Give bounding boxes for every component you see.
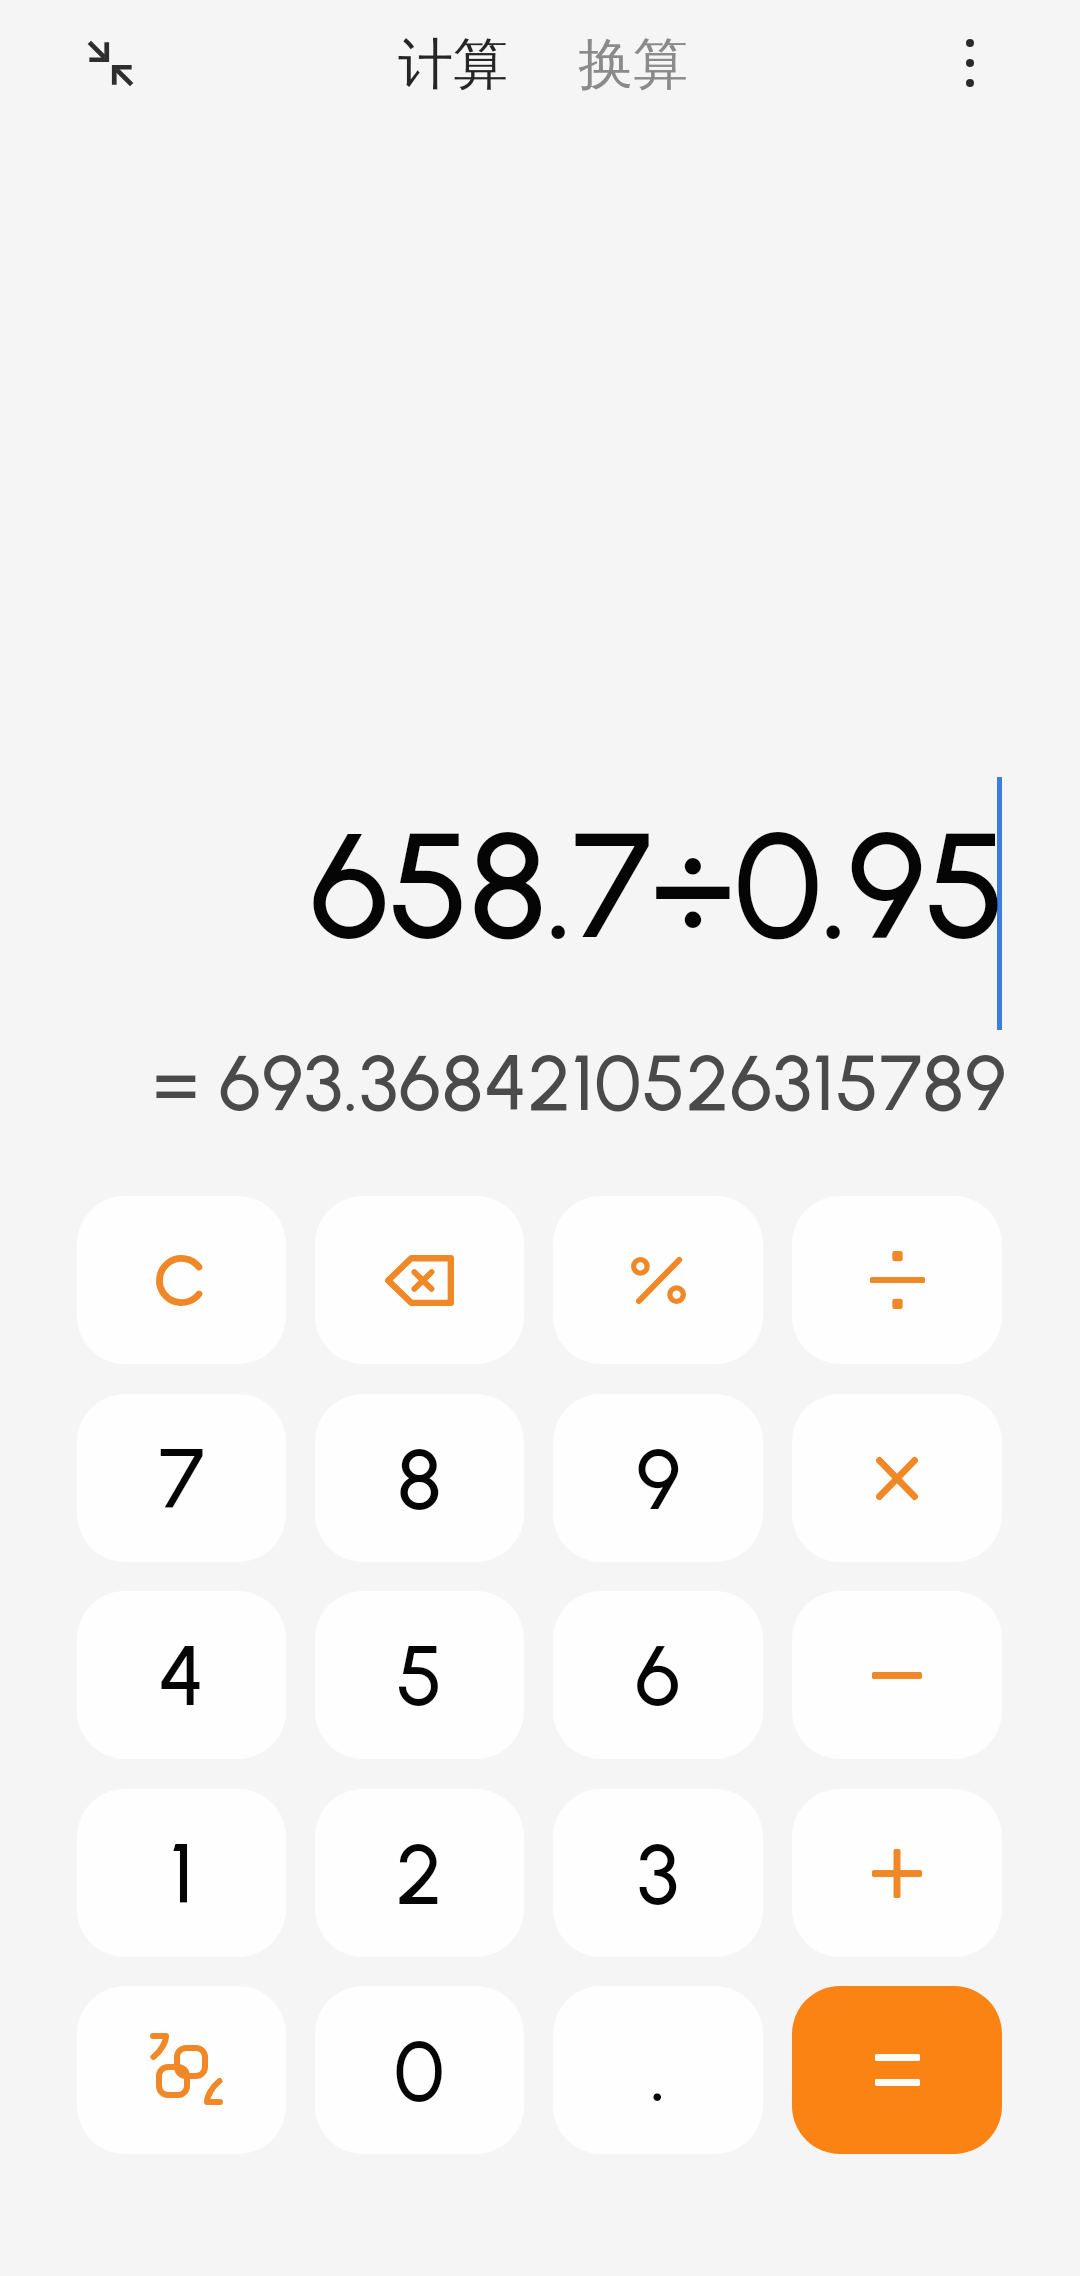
staticText: . — [650, 2020, 667, 2121]
button[interactable]: Divide — [792, 1196, 1002, 1364]
staticText: = 693.3684210526315789 — [0, 1036, 1007, 1130]
button[interactable]: 7 — [77, 1394, 286, 1562]
button[interactable]: Add — [792, 1789, 1002, 1957]
staticText: 1 — [170, 1823, 194, 1924]
button[interactable]: Collapse — [60, 13, 160, 113]
button[interactable]: 5 — [315, 1591, 524, 1759]
staticText: 8 — [397, 1428, 442, 1529]
button[interactable]: More options — [920, 13, 1020, 113]
staticText: 5 — [396, 1625, 443, 1726]
button[interactable]: Percent — [553, 1196, 763, 1364]
button[interactable]: Subtract — [792, 1591, 1002, 1759]
button[interactable]: 0 — [315, 1986, 524, 2154]
button[interactable]: 计算 — [390, 20, 516, 109]
button[interactable]: . — [553, 1986, 763, 2154]
staticText: 6 — [635, 1625, 681, 1726]
staticText: 7 — [159, 1428, 205, 1529]
button[interactable]: 3 — [553, 1789, 763, 1957]
button[interactable]: 6 — [553, 1591, 763, 1759]
button[interactable]: 2 — [315, 1789, 524, 1957]
staticText: 2 — [396, 1823, 443, 1924]
staticText: 3 — [637, 1823, 679, 1924]
button[interactable]: 9 — [553, 1394, 763, 1562]
staticText: 换算 — [578, 30, 688, 99]
button[interactable]: 4 — [77, 1591, 286, 1759]
staticText: 0 — [394, 2020, 445, 2121]
button[interactable]: Clear — [77, 1196, 286, 1364]
button[interactable]: Equals — [792, 1986, 1002, 2154]
staticText: 4 — [158, 1625, 205, 1726]
staticText: 计算 — [398, 30, 508, 99]
button[interactable]: 换算 — [570, 20, 696, 109]
button[interactable]: Unit converter — [77, 1986, 286, 2154]
button[interactable]: 8 — [315, 1394, 524, 1562]
button[interactable]: Multiply — [792, 1394, 1002, 1562]
button[interactable]: 1 — [77, 1789, 286, 1957]
staticText: 658.7÷0.95 — [0, 797, 1005, 973]
staticText: 9 — [636, 1428, 681, 1529]
button[interactable]: Backspace — [315, 1196, 524, 1364]
